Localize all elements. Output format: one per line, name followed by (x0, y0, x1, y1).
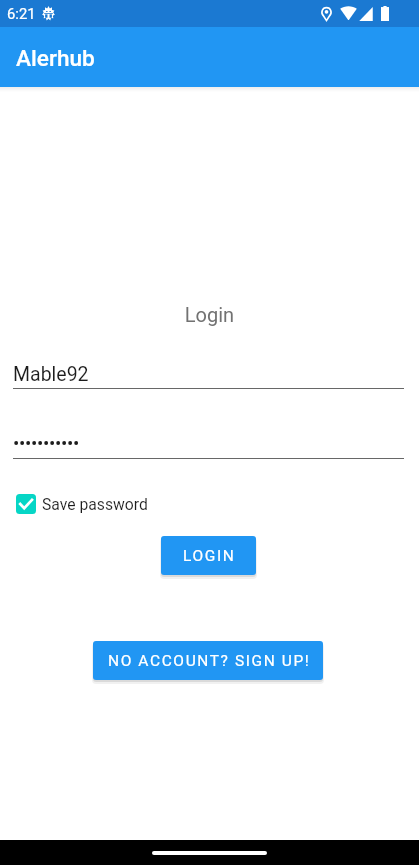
button[interactable]: NO ACCOUNT? SIGN UP! (93, 641, 323, 680)
other: Wi-Fi (340, 7, 357, 20)
button[interactable]: Password (13, 430, 404, 459)
other: Developer options (42, 6, 55, 21)
staticText: Alerhub (16, 45, 95, 71)
other: Location (321, 7, 332, 21)
button[interactable]: Save password (16, 494, 148, 514)
button[interactable]: LOGIN (161, 536, 256, 575)
staticText: Login (0, 303, 419, 326)
button[interactable]: Username (13, 356, 404, 389)
staticText: NO ACCOUNT? SIGN UP! (108, 652, 311, 670)
staticText: 6:21 (7, 5, 36, 22)
staticText: Mable92 (13, 363, 89, 386)
button[interactable]: Home (152, 851, 267, 855)
staticText: LOGIN (183, 547, 236, 565)
staticText: Save password (42, 495, 148, 513)
